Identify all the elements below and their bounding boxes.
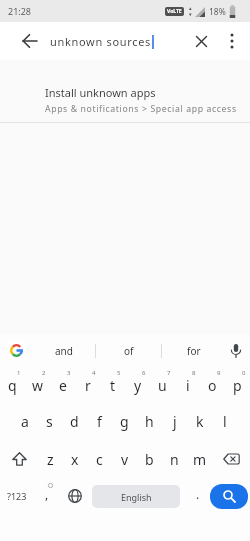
staticText: a [21,412,29,431]
button[interactable]: g [112,403,137,440]
staticText: 4 [92,369,96,377]
button[interactable]: . [182,478,207,514]
button[interactable] [218,27,246,55]
staticText: x [71,450,79,469]
button[interactable]: t [100,367,125,403]
staticText: 8 [192,369,196,377]
staticText: Install unknown apps [45,85,156,100]
staticText: Apps & notifications > Special app acces… [45,103,237,115]
button[interactable]: w [25,367,50,403]
button[interactable]: q [0,367,25,403]
staticText: j [173,412,177,431]
staticText: s [46,412,53,431]
staticText: y [134,376,142,395]
button[interactable] [184,24,218,58]
button[interactable] [0,440,38,478]
staticText: g [120,412,129,431]
button[interactable]: s [37,403,62,440]
staticText: i [186,376,190,395]
staticText: e [59,376,67,395]
button[interactable]: , [33,478,60,514]
staticText: 1 [17,369,21,377]
staticText: w [32,376,44,395]
button[interactable] [225,340,247,362]
button[interactable]: j [162,403,187,440]
staticText: f [97,412,102,431]
staticText: for [187,344,201,358]
button[interactable] [14,25,46,57]
button[interactable]: English [92,485,180,508]
staticText: English [121,491,152,503]
button[interactable]: z [38,440,62,478]
staticText: 0 [242,369,246,377]
button[interactable]: x [62,440,87,478]
button[interactable] [60,478,90,514]
staticText: 5 [117,369,121,377]
staticText: m [193,450,207,469]
staticText: p [233,376,242,395]
button[interactable]: r [75,367,100,403]
button[interactable]: u [150,367,175,403]
staticText: t [110,376,116,395]
button[interactable]: e [50,367,75,403]
button[interactable] [212,440,250,478]
staticText: h [145,412,154,431]
staticText: k [196,412,204,431]
button[interactable]: a [13,403,37,440]
staticText: q [8,376,17,395]
staticText: r [85,376,91,395]
staticText: . [196,486,200,502]
button[interactable]: b [137,440,162,478]
button[interactable]: d [62,403,87,440]
button[interactable]: ?123 [0,478,33,514]
staticText: z [47,450,54,469]
staticText: 7 [167,369,171,377]
staticText: 9 [217,369,221,377]
staticText: of [124,344,134,358]
button[interactable]: y [125,367,150,403]
staticText: 21:28 [8,5,32,17]
staticText: v [121,450,129,469]
button[interactable]: f [87,403,112,440]
staticText: d [70,412,79,431]
staticText: ?123 [7,490,27,502]
button[interactable] [6,340,27,361]
staticText: u [158,376,167,395]
button[interactable]: k [187,403,212,440]
button[interactable]: l [212,403,237,440]
staticText: c [96,450,103,469]
button[interactable]: Install unknown apps [0,60,250,122]
staticText: 6 [142,369,146,377]
staticText: n [170,450,179,469]
button[interactable]: c [87,440,112,478]
staticText: VoLTE [167,8,182,15]
button[interactable]: h [137,403,162,440]
staticText: o [208,376,217,395]
button[interactable]: and [32,334,95,367]
button[interactable]: for [162,334,225,367]
staticText: 18% [209,6,226,18]
button[interactable]: p [225,367,250,403]
button[interactable]: m [187,440,212,478]
button[interactable] [210,484,248,509]
button[interactable]: i [175,367,200,403]
staticText: unknown sources [50,34,152,49]
staticText: 3 [67,369,71,377]
staticText: and [55,344,73,358]
button[interactable]: o [200,367,225,403]
button[interactable]: n [162,440,187,478]
staticText: 2 [42,369,46,377]
staticText: , [45,486,49,502]
staticText: b [145,450,154,469]
button[interactable]: of [96,334,161,367]
staticText: l [223,412,227,431]
button[interactable]: v [112,440,137,478]
